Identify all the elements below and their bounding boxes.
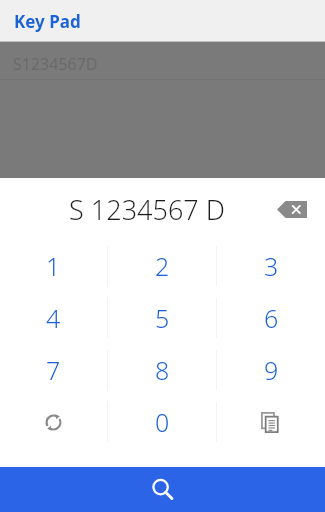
button[interactable]: 8 (108, 344, 216, 396)
button[interactable]: Copy (217, 396, 325, 448)
button[interactable]: 7 (0, 344, 107, 396)
staticText: 3 (264, 249, 279, 283)
staticText: 7 (46, 353, 61, 387)
staticText: S1234567D (13, 53, 98, 75)
button[interactable]: Backspace (275, 196, 309, 222)
button[interactable]: 4 (0, 292, 107, 344)
button[interactable]: 1 (0, 240, 107, 292)
staticText: Key Pad (14, 10, 81, 33)
staticText: 2 (155, 249, 170, 283)
staticText: 9 (264, 353, 279, 387)
other: Reset (43, 412, 64, 433)
staticText: 5 (155, 301, 170, 335)
button[interactable]: 0 (108, 396, 216, 448)
button[interactable]: 3 (217, 240, 325, 292)
staticText: 0 (155, 405, 170, 439)
other: Copy (261, 412, 282, 433)
staticText: S 1234567 D (69, 191, 225, 228)
button[interactable]: Reset (0, 396, 107, 448)
staticText: 4 (46, 301, 61, 335)
button[interactable]: 5 (108, 292, 216, 344)
staticText: 8 (155, 353, 170, 387)
staticText: 6 (264, 301, 279, 335)
button[interactable]: 9 (217, 344, 325, 396)
button[interactable]: 6 (217, 292, 325, 344)
button[interactable]: 2 (108, 240, 216, 292)
staticText: 1 (46, 249, 61, 283)
button[interactable]: Search (109, 467, 217, 512)
